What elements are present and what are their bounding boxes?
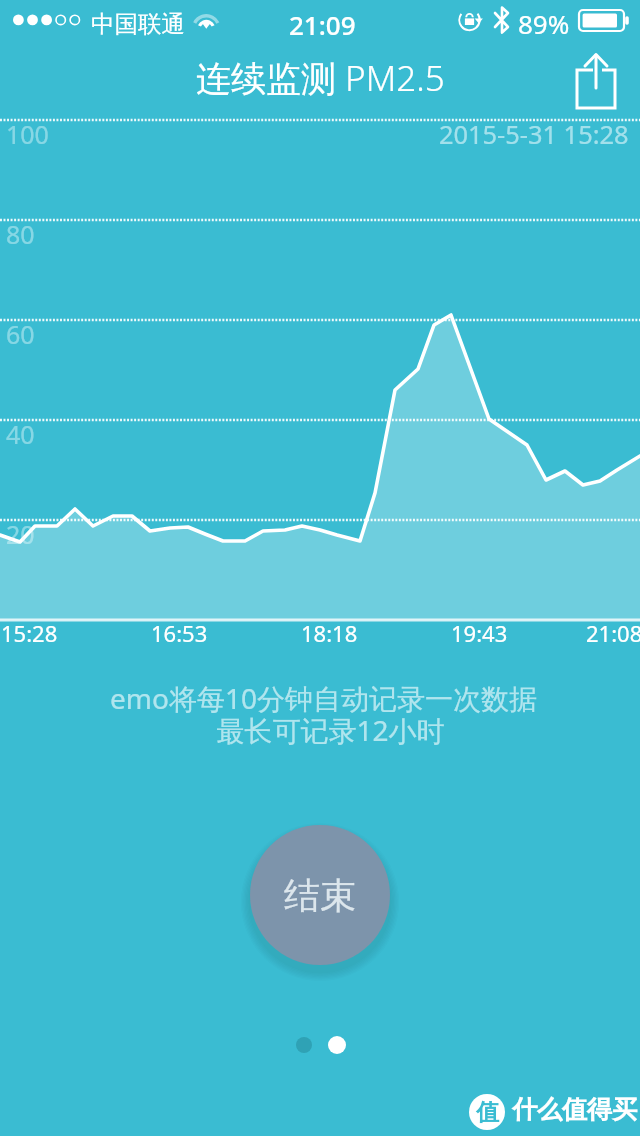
staticText: 89% xyxy=(518,6,570,41)
button[interactable]: Share xyxy=(570,48,622,100)
staticText: 中国联通 xyxy=(91,9,185,39)
staticText: 连续监测 PM2.5 xyxy=(196,54,445,102)
staticText: 什么值得买 xyxy=(512,1094,637,1125)
button[interactable]: 结束 xyxy=(250,825,390,965)
staticText: 16:53 xyxy=(151,618,208,648)
staticText: 最长可记录12小时 xyxy=(216,711,445,749)
staticText: 值 xyxy=(476,1098,499,1127)
staticText: 2015-5-31 15:28 xyxy=(439,117,629,152)
staticText: 100 xyxy=(6,117,49,151)
staticText: 结束 xyxy=(284,873,356,918)
staticText: 15:28 xyxy=(1,618,58,648)
staticText: 80 xyxy=(6,217,35,251)
staticText: emo将每10分钟自动记录一次数据 xyxy=(110,679,537,717)
button[interactable]: Page 1 xyxy=(296,1037,312,1053)
staticText: 21:08 xyxy=(586,618,640,648)
staticText: 21:09 xyxy=(289,7,356,42)
staticText: 40 xyxy=(6,417,35,451)
staticText: 60 xyxy=(6,317,35,351)
staticText: 20 xyxy=(6,517,35,551)
staticText: 19:43 xyxy=(451,618,508,648)
staticText: 18:18 xyxy=(301,618,358,648)
button[interactable]: Page 2 xyxy=(328,1036,346,1054)
